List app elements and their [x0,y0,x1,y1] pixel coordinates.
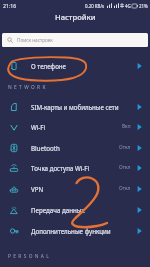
staticText: Bluetooth [31,144,60,152]
staticText: Настройки [55,12,96,22]
staticText: 21:16 [3,2,17,9]
button[interactable]: Bluetooth [0,137,150,158]
button[interactable]: Точка доступа Wi-Fi [0,157,150,178]
button[interactable]: О телефоне [0,55,150,76]
button[interactable]: VPN [0,178,150,199]
staticText: SIM-карты и мобильные сети [31,103,119,111]
staticText: Откл [119,164,131,171]
button[interactable]: Wi-Fi [0,116,150,137]
other: Wi-Fi [137,124,142,130]
staticText: Откл [119,144,131,151]
other: Bluetooth [137,145,142,151]
staticText: Точка доступа Wi-Fi [31,164,90,172]
staticText: 21% [139,3,148,9]
button[interactable]: SIM-карты и мобильные сети [0,96,150,117]
staticText: Wi-Fi [31,123,46,131]
other: VPN [137,186,142,192]
button[interactable]: Поиск настроек [2,33,148,47]
button[interactable]: Передача данных [0,199,150,220]
staticText: Дополнительные функции [31,227,111,235]
staticText: Откл [119,185,131,192]
button[interactable]: Дополнительные функции [0,220,150,241]
staticText: 4G [125,3,131,9]
staticText: P E R S O N A L [8,253,50,260]
other: SIM cards [137,104,142,110]
staticText: О телефоне [31,62,67,70]
staticText: Поиск настроек [17,37,53,43]
staticText: VPN [31,185,44,193]
staticText: 0.20 KB/s [85,3,105,9]
staticText: N E T W O R K [8,84,47,91]
staticText: Вкл [122,123,131,130]
other: Hotspot [137,165,142,171]
other: Data usage [137,207,142,213]
other: Additional [137,228,142,234]
other: About phone [137,63,142,69]
staticText: Передача данных [31,206,85,214]
